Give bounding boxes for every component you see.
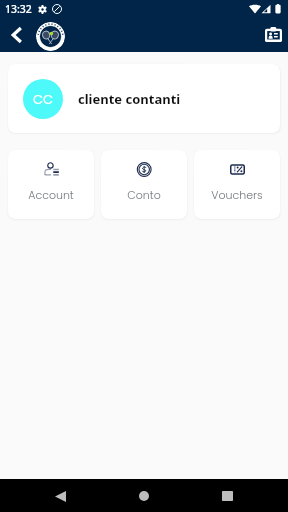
- button[interactable]: Back: [5, 23, 29, 47]
- button[interactable]: Home: [128, 480, 160, 512]
- button[interactable]: Back: [44, 480, 76, 512]
- button[interactable]: Membership card: [261, 22, 285, 46]
- button[interactable]: Conto: [101, 150, 187, 219]
- staticText: Account: [28, 187, 74, 202]
- button[interactable]: CC: [8, 64, 280, 133]
- button[interactable]: Account: [8, 150, 94, 219]
- staticText: CC: [33, 90, 54, 108]
- staticText: Conto: [127, 187, 161, 202]
- staticText: Vouchers: [211, 187, 263, 202]
- staticText: 13:32: [5, 2, 32, 16]
- staticText: cliente contanti: [78, 90, 181, 108]
- button[interactable]: Vouchers: [194, 150, 280, 219]
- button[interactable]: Club logo: [36, 22, 65, 51]
- button[interactable]: Recent apps: [211, 480, 243, 512]
